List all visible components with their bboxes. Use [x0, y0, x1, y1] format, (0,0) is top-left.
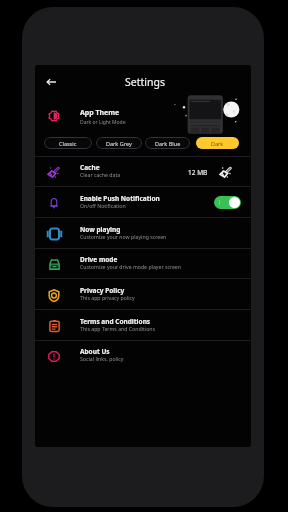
staticText: Cache: [80, 163, 100, 172]
button[interactable]: Dark Grey: [96, 137, 142, 149]
button[interactable]: Cache: [35, 157, 251, 187]
staticText: Terms and Conditions: [80, 317, 151, 326]
staticText: About Us: [80, 347, 110, 356]
staticText: Dark Grey: [106, 140, 132, 147]
staticText: Enable Push Notification: [80, 194, 160, 203]
button[interactable]: [214, 196, 241, 209]
button[interactable]: Drive mode: [35, 249, 251, 279]
staticText: Clear cache data: [80, 171, 121, 178]
staticText: Drive mode: [80, 255, 118, 264]
staticText: Dark: [211, 140, 224, 147]
button[interactable]: Back: [41, 72, 61, 92]
button[interactable]: Enable Push Notification: [35, 188, 251, 218]
button[interactable]: Privacy Policy: [35, 280, 251, 310]
staticText: 12 MB: [188, 168, 208, 177]
button[interactable]: Now playing: [35, 219, 251, 249]
staticText: App Theme: [80, 108, 120, 118]
staticText: Social links, policy: [80, 355, 124, 362]
staticText: This app privacy policy: [80, 294, 135, 301]
staticText: Settings: [125, 75, 165, 89]
staticText: Classic: [59, 140, 77, 147]
button[interactable]: Dark: [196, 137, 239, 149]
button[interactable]: Classic: [44, 137, 92, 149]
staticText: This app Terms and Conditions: [80, 325, 156, 332]
staticText: Privacy Policy: [80, 286, 125, 295]
staticText: Dark Blue: [155, 140, 181, 147]
staticText: Now playing: [80, 225, 121, 234]
button[interactable]: Terms and Conditions: [35, 311, 251, 341]
staticText: Customize your drive mode player screen: [80, 263, 181, 270]
staticText: Dark or Light Mode: [80, 119, 126, 126]
staticText: On/off Notification: [80, 202, 126, 209]
staticText: Customize your now playing screen: [80, 233, 167, 240]
button[interactable]: About Us: [35, 341, 251, 371]
button[interactable]: Dark Blue: [145, 137, 190, 149]
